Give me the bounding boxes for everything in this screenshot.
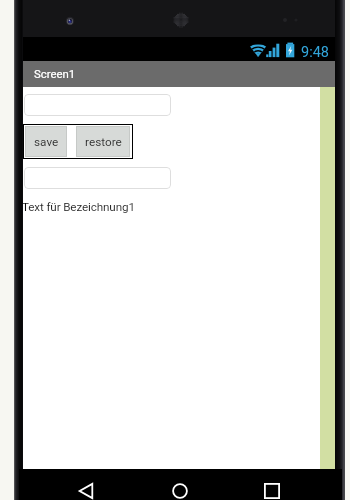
- button[interactable]: save: [25, 126, 67, 157]
- staticText: save: [34, 135, 59, 149]
- staticText: Text für Bezeichnung1: [22, 200, 135, 214]
- staticText: Screen1: [34, 67, 76, 80]
- button[interactable]: Back: [75, 480, 97, 500]
- button[interactable]: [24, 167, 171, 189]
- button[interactable]: Screen1: [23, 61, 335, 87]
- staticText: restore: [85, 135, 122, 149]
- button[interactable]: [24, 94, 171, 116]
- staticText: 9:48: [301, 44, 329, 61]
- button[interactable]: Home: [169, 480, 191, 500]
- button[interactable]: restore: [76, 126, 130, 157]
- button[interactable]: Recent apps: [261, 480, 283, 500]
